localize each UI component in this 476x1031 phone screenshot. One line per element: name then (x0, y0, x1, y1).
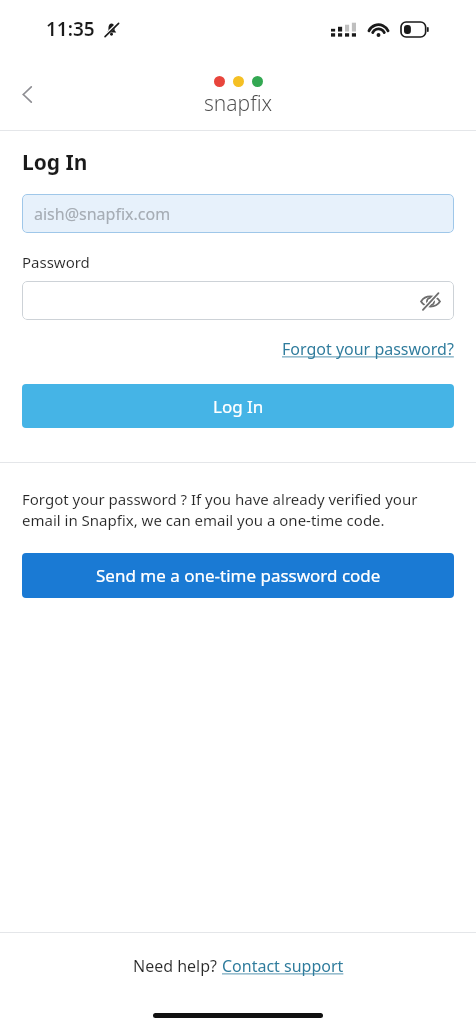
staticText: snapfix (204, 89, 273, 118)
staticText: aish@snapfix.com (34, 203, 171, 225)
staticText: Password (22, 252, 90, 272)
staticText: Forgot your password? (282, 338, 454, 360)
button[interactable]: aish@snapfix.com (22, 194, 454, 233)
staticText: Need help? (133, 955, 222, 977)
button[interactable]: Show password (22, 281, 454, 320)
button[interactable]: Show password (414, 285, 446, 317)
button[interactable]: Back (4, 71, 50, 117)
staticText: Log In (213, 395, 264, 418)
staticText: Forgot your password ? If you have alrea… (22, 489, 454, 531)
button[interactable]: Forgot your password? (282, 336, 454, 362)
button[interactable]: Send me a one-time password code (22, 553, 454, 598)
button[interactable]: Contact support (222, 955, 344, 977)
staticText: 11:35 (46, 16, 95, 42)
staticText: Contact support (222, 955, 344, 977)
button[interactable]: Log In (22, 384, 454, 428)
staticText: Log In (22, 148, 88, 177)
staticText: Send me a one-time password code (96, 564, 381, 587)
